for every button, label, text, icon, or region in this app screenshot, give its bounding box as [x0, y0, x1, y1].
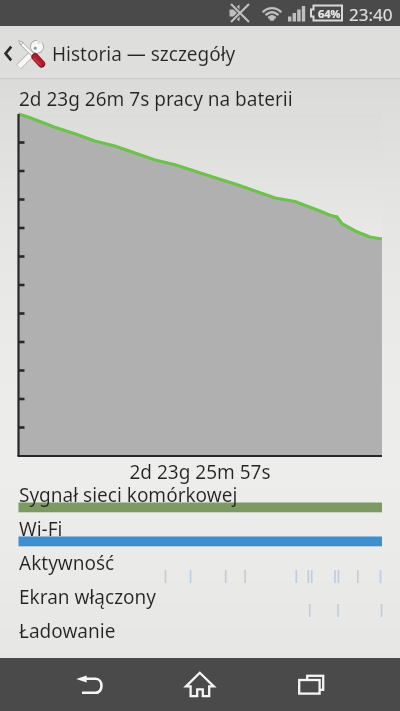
- button[interactable]: Aktywność: [0, 550, 400, 583]
- button[interactable]: Ekran włączony: [0, 584, 400, 617]
- staticText: Aktywność: [19, 550, 115, 576]
- button[interactable]: Ekran główny: [133, 658, 266, 711]
- staticText: Ładowanie: [19, 618, 116, 644]
- button[interactable]: Ładowanie: [0, 618, 400, 651]
- staticText: 23:40: [349, 3, 393, 26]
- staticText: 64%: [318, 6, 341, 21]
- staticText: 2d 23g 26m 7s pracy na baterii: [19, 86, 293, 112]
- button[interactable]: Wi-Fi: [0, 516, 400, 549]
- button[interactable]: Wstecz: [0, 658, 133, 711]
- button[interactable]: Wstecz: [0, 26, 17, 79]
- staticText: Ekran włączony: [19, 584, 156, 610]
- button[interactable]: Ostatnie aplikacje: [266, 658, 400, 711]
- staticText: Wi-Fi: [19, 516, 63, 542]
- staticText: Sygnał sieci komórkowej: [19, 482, 238, 508]
- staticText: 2d 23g 25m 57s: [0, 459, 400, 485]
- button[interactable]: Sygnał sieci komórkowej: [0, 482, 400, 515]
- staticText: Historia — szczegóły: [52, 41, 236, 67]
